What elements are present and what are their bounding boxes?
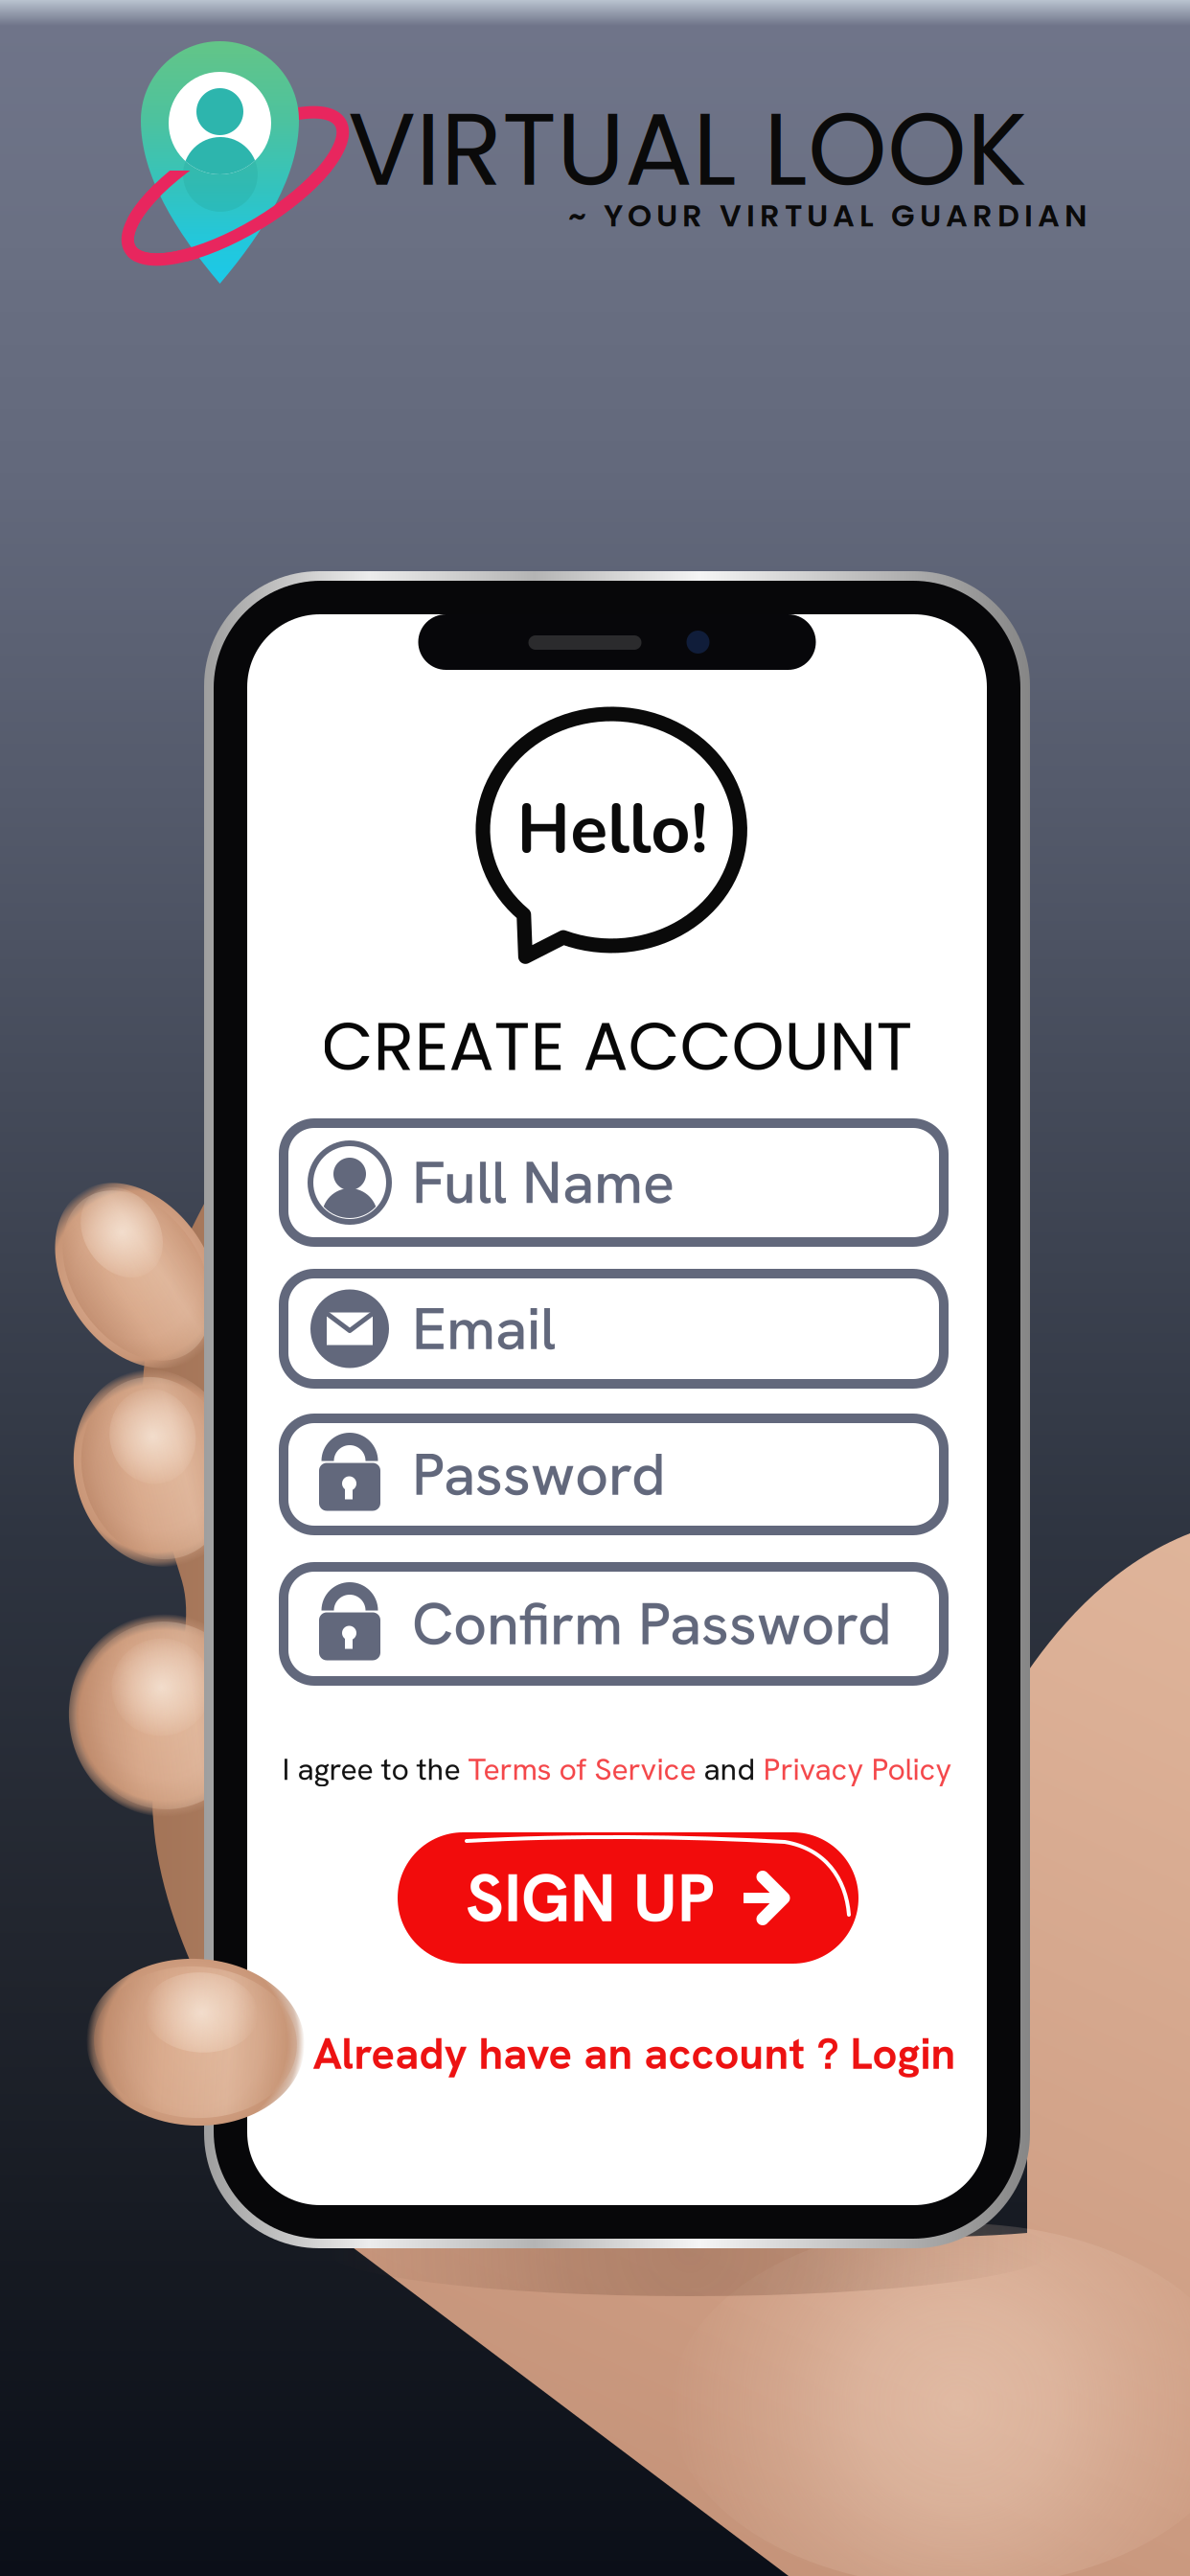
staticText: I agree to the xyxy=(282,1749,468,1789)
staticText: Email xyxy=(412,1290,556,1367)
staticText: Full Name xyxy=(412,1144,675,1221)
button[interactable]: Password xyxy=(284,1418,944,1530)
staticText: Confirm Password xyxy=(412,1586,892,1662)
staticText: Privacy Policy xyxy=(763,1749,952,1789)
button[interactable]: Privacy Policy xyxy=(763,1749,952,1789)
button[interactable]: Terms of Service xyxy=(468,1749,696,1789)
staticText: CREATE ACCOUNT xyxy=(321,1000,913,1093)
staticText: and xyxy=(696,1749,763,1789)
button[interactable]: Full Name xyxy=(284,1123,944,1242)
staticText: Password xyxy=(412,1436,666,1513)
staticText: SIGN UP xyxy=(466,1855,715,1941)
staticText: Terms of Service xyxy=(468,1749,696,1789)
button[interactable]: SIGN UP xyxy=(398,1832,858,1964)
button[interactable]: Email xyxy=(284,1274,944,1384)
staticText: Already have an account ? Login xyxy=(313,2025,956,2082)
staticText: VIRTUAL LOOK xyxy=(348,79,1027,220)
button[interactable]: Confirm Password xyxy=(284,1567,944,1681)
button[interactable]: Already have an account ? Login xyxy=(264,2019,1004,2088)
staticText: ~ YOUR VIRTUAL GUARDIAN xyxy=(568,194,1087,237)
staticText: Hello! xyxy=(519,787,721,886)
